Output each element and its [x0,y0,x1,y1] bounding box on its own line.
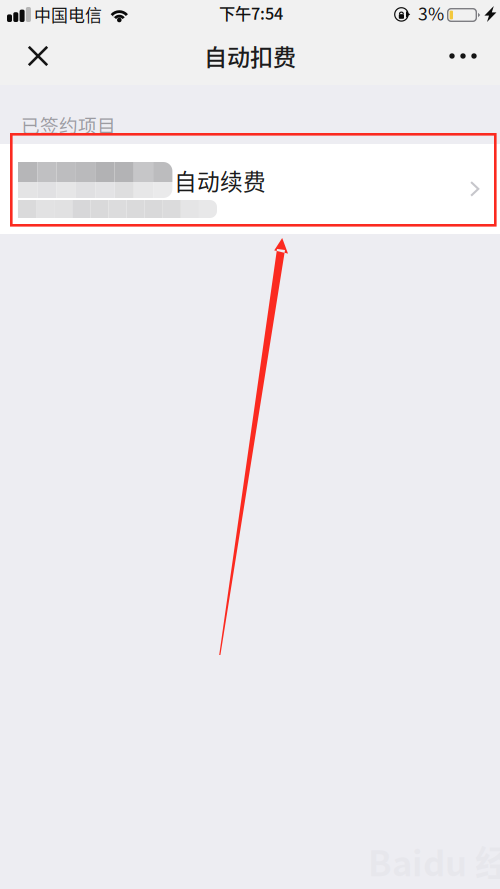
staticText: 中国电信 [34,2,102,26]
button[interactable]: 更多 [441,34,485,78]
staticText: 自动续费 [174,164,266,197]
staticText: 自动扣费 [204,39,296,72]
staticText: 3% [418,0,444,25]
button[interactable]: 自动续费 [0,144,500,234]
staticText: 下午7:54 [219,1,283,25]
staticText: 已签约项目 [21,111,116,138]
button[interactable]: 关闭 [16,34,60,78]
